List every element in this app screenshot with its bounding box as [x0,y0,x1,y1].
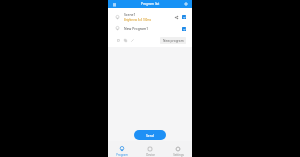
button[interactable]: New Program1 [108,23,192,34]
staticText: New Program1 [124,26,149,31]
staticText: New program [163,39,184,43]
staticText: Settings [173,153,184,157]
button[interactable]: Copy [123,38,128,43]
staticText: Program list [141,2,160,6]
staticText: Scene1 [124,12,136,17]
button[interactable]: Add [183,1,189,7]
button[interactable]: Scene1 [108,11,192,23]
staticText: Send [146,133,154,138]
button[interactable]: New program [160,37,186,44]
button[interactable]: Menu [111,1,117,7]
button[interactable]: Settings [164,141,192,157]
button[interactable]: Edit [130,38,135,43]
button[interactable]: Program [108,141,136,157]
button[interactable]: Share [174,15,179,20]
button[interactable]: Select [182,15,186,19]
button[interactable]: Device [136,141,164,157]
staticText: Brightness 5x5 100ms [124,18,151,22]
staticText: Device [146,153,155,157]
button[interactable]: Select [182,27,186,31]
button[interactable]: Send [134,130,166,140]
button[interactable]: Delete [116,38,121,43]
staticText: Program [116,153,128,157]
